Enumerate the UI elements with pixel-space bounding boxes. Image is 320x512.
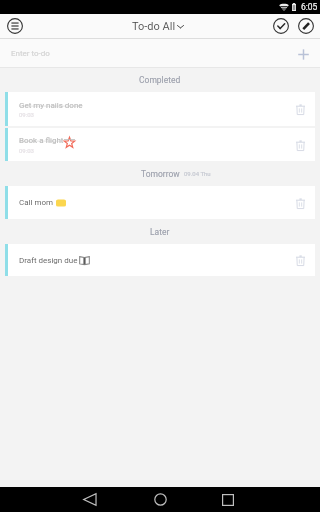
staticText: Later	[150, 227, 170, 237]
button[interactable]: Delete	[291, 136, 309, 154]
staticText: Tomorrow	[141, 169, 180, 179]
button[interactable]: Home	[148, 487, 173, 512]
button[interactable]: Delete	[291, 100, 309, 118]
staticText: Call mom	[19, 198, 54, 207]
staticText: Draft design due	[19, 256, 78, 265]
staticText: To-do All	[132, 20, 176, 33]
button[interactable]: Edit	[295, 15, 317, 37]
button[interactable]: Call mom	[5, 186, 315, 219]
staticText: 09:03	[19, 147, 34, 154]
button[interactable]: To-do All	[132, 20, 184, 33]
button[interactable]: Delete	[291, 251, 309, 269]
staticText: Book a flight	[19, 136, 64, 145]
button[interactable]: Draft design due	[5, 244, 315, 276]
staticText: Enter to-do	[11, 49, 50, 58]
button[interactable]: Delete	[291, 194, 309, 212]
button[interactable]: Recents	[215, 487, 240, 512]
button[interactable]: Book a flight	[5, 128, 315, 161]
staticText: 09.04 Thu	[184, 170, 211, 177]
staticText: 09:03	[19, 111, 34, 118]
staticText: 6:05	[301, 2, 318, 12]
button[interactable]: Add to-do	[293, 44, 313, 64]
button[interactable]: Mark all done	[270, 15, 292, 37]
staticText: Get my nails done	[19, 101, 83, 110]
button[interactable]: Back	[77, 487, 102, 512]
button[interactable]: Menu	[4, 15, 26, 37]
button[interactable]: Get my nails done	[5, 92, 315, 126]
staticText: Completed	[139, 75, 181, 85]
